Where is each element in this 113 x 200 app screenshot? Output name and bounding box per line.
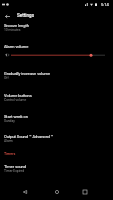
staticText: Gradually increase volume (4, 71, 50, 76)
staticText: Off (4, 76, 9, 80)
staticText: Start week on (4, 114, 28, 119)
button[interactable]: Navigate up (2, 11, 12, 21)
button[interactable]: Recent apps (76, 183, 93, 200)
button[interactable]: Alarm volume slider (0, 48, 113, 61)
button[interactable]: Volume buttons (0, 90, 113, 111)
staticText: Timers (4, 152, 16, 156)
staticText: Volume buttons (4, 93, 32, 98)
staticText: Alarm volume (4, 44, 29, 49)
button[interactable]: Snooze length (0, 20, 113, 41)
staticText: 5:14 (101, 2, 109, 7)
staticText: Alarm (4, 139, 13, 143)
button[interactable]: Alarm volume (0, 41, 113, 62)
staticText: 10 minutes (4, 28, 21, 32)
button[interactable]: Timer sound (0, 161, 113, 182)
button[interactable]: Start week on (0, 111, 113, 132)
button[interactable]: Home (48, 183, 65, 200)
staticText: Timer sound (4, 164, 27, 169)
staticText: Timer Expired (4, 169, 25, 173)
staticText: Snooze length (4, 23, 29, 28)
staticText: Control volume (4, 98, 27, 102)
staticText: Output Sound ™ Advanced ™ (4, 134, 54, 139)
button[interactable]: Back (16, 183, 33, 200)
staticText: Sunday (4, 119, 15, 123)
button[interactable]: Gradually increase volume (0, 68, 113, 89)
button[interactable]: Output Sound ™ Advanced ™ (0, 131, 113, 152)
staticText: Settings (17, 13, 34, 18)
